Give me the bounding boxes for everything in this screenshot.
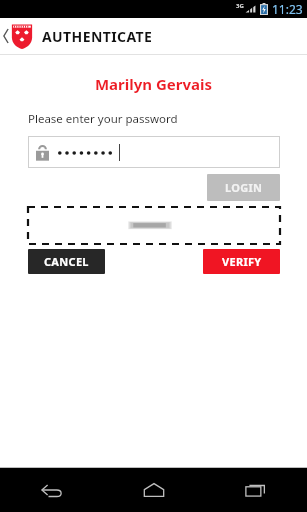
button[interactable]: Back (0, 468, 103, 512)
staticText: Marilyn Gervais (0, 74, 307, 94)
staticText: 3G (236, 2, 244, 10)
button[interactable]: Home (103, 468, 205, 512)
staticText: CANCEL (44, 254, 89, 269)
staticText: 11:23 (272, 1, 303, 17)
staticText: LOGIN (225, 180, 263, 195)
button[interactable]: LOGIN (207, 174, 280, 201)
button[interactable]: Recent apps (205, 468, 307, 512)
staticText: Please enter your password (28, 111, 178, 127)
staticText: VERIFY (222, 254, 262, 269)
button[interactable] (28, 136, 280, 168)
button[interactable]: Up (3, 19, 33, 53)
staticText: AUTHENTICATE (42, 27, 153, 46)
button[interactable]: VERIFY (203, 249, 280, 274)
button[interactable]: CANCEL (28, 249, 105, 274)
